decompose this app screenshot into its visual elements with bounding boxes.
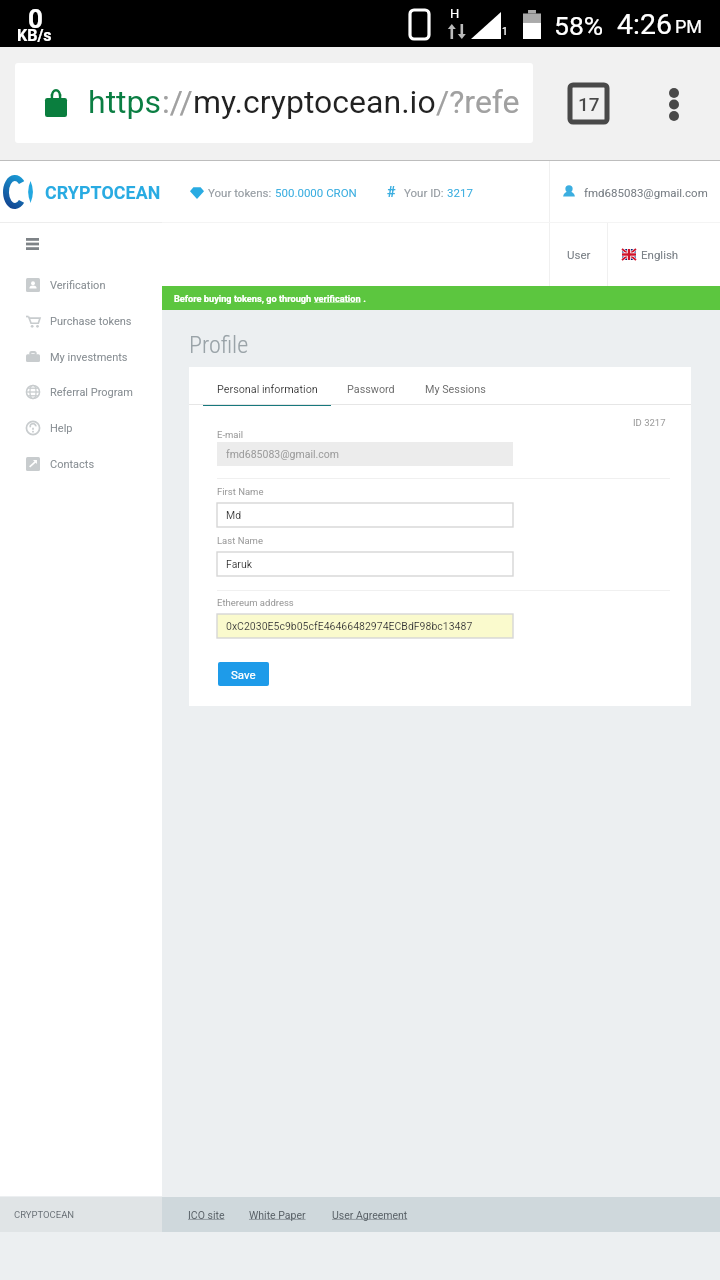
staticText: Faruk [226,558,253,570]
button[interactable]: English [608,222,697,286]
button[interactable]: Help [0,410,162,446]
staticText: Save [231,668,256,681]
button[interactable]: https [15,63,533,143]
staticText: Your tokens: [208,186,272,199]
staticText: Verification [50,279,106,292]
button[interactable]: Tabs [570,85,607,122]
staticText: :// [162,83,193,121]
staticText: Last Name [217,535,263,546]
staticText: English [641,248,679,261]
button[interactable]: More options [656,82,692,126]
staticText: 3217 [447,186,473,199]
staticText: E-mail [217,429,244,440]
staticText: Contacts [50,458,95,471]
staticText: Profile [189,331,249,359]
staticText: Referral Program [50,386,133,399]
staticText: . [361,293,366,304]
button[interactable]: Password [331,367,411,406]
staticText: 1 [502,26,508,38]
button[interactable]: Verification [0,267,162,303]
staticText: My investments [50,351,128,364]
button[interactable]: 0xC2030E5c9b05cfE46466482974ECBdF98bc134… [217,614,513,638]
staticText: Password [347,383,395,396]
staticText: CRYPTOCEAN [45,182,161,203]
staticText: My Sessions [425,383,486,396]
button[interactable]: Save [218,662,269,686]
button[interactable]: Referral Program [0,374,162,410]
staticText: Ethereum address [217,597,294,608]
staticText: H [450,6,460,21]
button[interactable]: Faruk [217,552,513,576]
staticText: 17 [578,93,600,115]
staticText: Your ID: [404,186,444,199]
staticText: Purchase tokens [50,315,132,328]
staticText: Personal information [217,383,318,396]
staticText: CRYPTOCEAN [14,1209,75,1220]
staticText: 0 [28,4,43,34]
staticText: Help [50,422,73,435]
button[interactable]: fmd685083@gmail.com [217,442,513,466]
staticText: my.cryptocean.io [193,83,436,121]
button[interactable]: Menu [0,227,162,261]
staticText: Before buying tokens, go through [174,293,314,304]
staticText: First Name [217,486,264,497]
staticText: 500.0000 CRON [275,186,357,199]
staticText: Md [226,509,242,521]
staticText: https [88,83,162,121]
staticText: # [387,184,396,201]
button[interactable]: Purchase tokens [0,303,162,339]
button[interactable]: My investments [0,339,162,375]
staticText: /?refe [436,83,520,121]
staticText: 58% [554,10,604,41]
staticText: PM [675,16,703,37]
button[interactable]: User Agreement [332,1209,408,1221]
staticText: verification [314,293,361,304]
button[interactable]: Md [217,503,513,527]
button[interactable]: My Sessions [411,367,499,406]
staticText: ID 3217 [633,417,666,428]
button[interactable]: ICO site [188,1209,225,1221]
staticText: 4:26 [617,8,672,41]
staticText: fmd685083@gmail.com [584,186,708,199]
button[interactable]: User [550,222,607,286]
button[interactable]: White Paper [249,1209,306,1221]
button[interactable]: Contacts [0,446,162,482]
staticText: KB/s [17,26,52,45]
staticText: User [567,248,591,261]
staticText: fmd685083@gmail.com [226,448,339,460]
staticText: 0xC2030E5c9b05cfE46466482974ECBdF98bc134… [226,620,473,632]
button[interactable]: Personal information [203,367,331,406]
